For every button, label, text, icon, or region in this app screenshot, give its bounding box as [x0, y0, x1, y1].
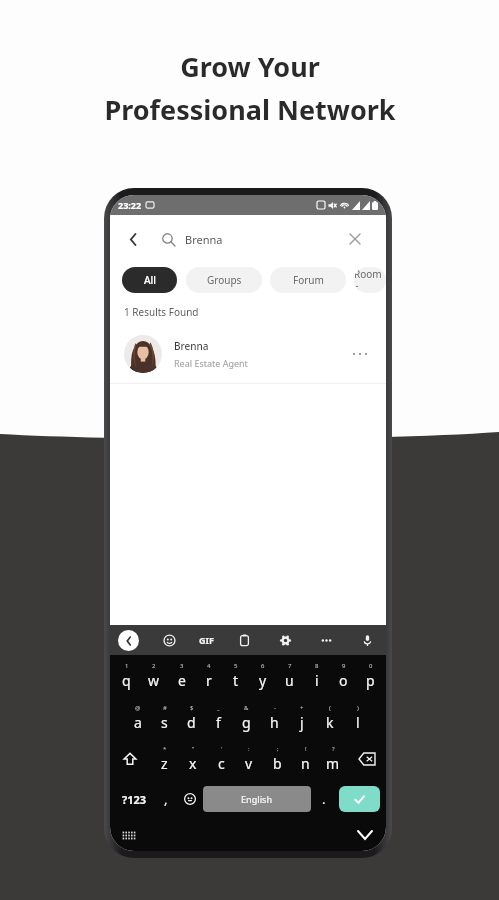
staticText: * — [163, 745, 167, 753]
button[interactable]: : — [235, 739, 263, 779]
staticText: ?123 — [122, 792, 147, 807]
staticText: Brenna — [174, 339, 209, 353]
button[interactable]: ? — [319, 739, 347, 779]
button[interactable]: 4 — [195, 655, 222, 697]
button[interactable]: More — [315, 629, 337, 651]
button[interactable]: * — [150, 739, 179, 779]
button[interactable]: All — [122, 267, 177, 293]
staticText: + — [300, 704, 304, 712]
button[interactable]: Shift — [110, 739, 150, 779]
button[interactable]: , — [155, 779, 177, 819]
staticText: i — [315, 671, 319, 690]
staticText: m — [326, 754, 340, 773]
button[interactable]: Back — [120, 226, 146, 252]
staticText: l — [356, 713, 360, 732]
staticText: Groups — [207, 273, 242, 287]
button[interactable]: ( — [316, 697, 344, 739]
button[interactable]: 0 — [357, 655, 384, 697]
staticText: @ — [135, 704, 141, 712]
staticText: o — [339, 671, 348, 690]
staticText: ; — [277, 745, 279, 753]
staticText: 0 — [369, 662, 373, 670]
staticText: z — [161, 754, 168, 773]
staticText: ? — [332, 745, 335, 753]
button[interactable]: ?123 — [114, 779, 155, 819]
button[interactable]: Switch keyboard — [120, 826, 138, 844]
button[interactable]: $ — [178, 697, 205, 739]
button[interactable]: 8 — [303, 655, 330, 697]
staticText: 5 — [234, 662, 238, 670]
button[interactable]: " — [179, 739, 207, 779]
staticText: ! — [305, 745, 307, 753]
button[interactable]: + — [288, 697, 316, 739]
staticText: " — [192, 745, 195, 753]
staticText: 1 Results Found — [124, 305, 199, 319]
button[interactable]: Clipboard — [233, 629, 255, 651]
staticText: # — [163, 704, 167, 712]
staticText: 3 — [180, 662, 184, 670]
button[interactable]: Voice input — [356, 629, 378, 651]
staticText: w — [148, 671, 160, 690]
staticText: ( — [329, 704, 331, 712]
button[interactable]: 5 — [222, 655, 249, 697]
button[interactable]: English — [203, 786, 311, 812]
staticText: a — [134, 713, 142, 732]
staticText: - — [274, 704, 276, 712]
button[interactable]: Close toolbar — [118, 630, 139, 651]
button[interactable]: Rooms — [354, 267, 386, 293]
button[interactable]: 3 — [168, 655, 195, 697]
button[interactable]: Emoji — [158, 629, 180, 651]
button[interactable]: & — [232, 697, 260, 739]
button[interactable]: Brenna — [150, 222, 376, 256]
staticText: Rooms — [354, 267, 386, 293]
button[interactable]: ! — [291, 739, 319, 779]
staticText: All — [144, 273, 156, 287]
staticText: u — [285, 671, 294, 690]
button[interactable]: . — [311, 779, 337, 819]
button[interactable]: 2 — [140, 655, 168, 697]
staticText: $ — [190, 704, 194, 712]
button[interactable]: Brenna — [110, 325, 386, 383]
staticText: Professional Network — [104, 91, 396, 128]
button[interactable]: 7 — [276, 655, 303, 697]
button[interactable]: Groups — [186, 267, 262, 293]
button[interactable]: 9 — [330, 655, 357, 697]
staticText: GIF — [199, 634, 214, 646]
staticText: _ — [217, 704, 220, 712]
button[interactable]: 6 — [249, 655, 276, 697]
staticText: k — [326, 713, 334, 732]
staticText: English — [241, 793, 273, 805]
button[interactable]: More options — [348, 342, 372, 366]
staticText: h — [270, 713, 279, 732]
staticText: s — [161, 713, 168, 732]
button[interactable]: ) — [344, 697, 372, 739]
button[interactable]: @ — [124, 697, 151, 739]
staticText: y — [259, 671, 267, 690]
button[interactable]: GIF — [199, 629, 214, 651]
staticText: b — [273, 754, 282, 773]
staticText: 2 — [152, 662, 156, 670]
staticText: c — [218, 754, 225, 773]
staticText: 7 — [288, 662, 292, 670]
button[interactable]: ' — [207, 739, 235, 779]
button[interactable]: 1 — [112, 655, 140, 697]
button[interactable]: _ — [205, 697, 232, 739]
staticText: n — [301, 754, 310, 773]
staticText: : — [248, 745, 250, 753]
staticText: 1 — [125, 662, 129, 670]
button[interactable]: Hide keyboard — [354, 824, 376, 846]
staticText: j — [300, 713, 304, 732]
staticText: Forum — [293, 273, 324, 287]
button[interactable]: # — [151, 697, 178, 739]
button[interactable]: - — [260, 697, 288, 739]
button[interactable]: Backspace — [347, 739, 386, 779]
button[interactable]: Clear search — [346, 230, 364, 248]
staticText: Grow Your — [180, 48, 320, 85]
button[interactable]: Emoji keyboard — [177, 779, 203, 819]
button[interactable]: Settings — [274, 629, 296, 651]
button[interactable]: Forum — [270, 267, 346, 293]
staticText: Real Estate Agent — [174, 357, 248, 369]
button[interactable]: Enter — [339, 786, 380, 812]
button[interactable]: ; — [263, 739, 291, 779]
staticText: 4 — [207, 662, 211, 670]
